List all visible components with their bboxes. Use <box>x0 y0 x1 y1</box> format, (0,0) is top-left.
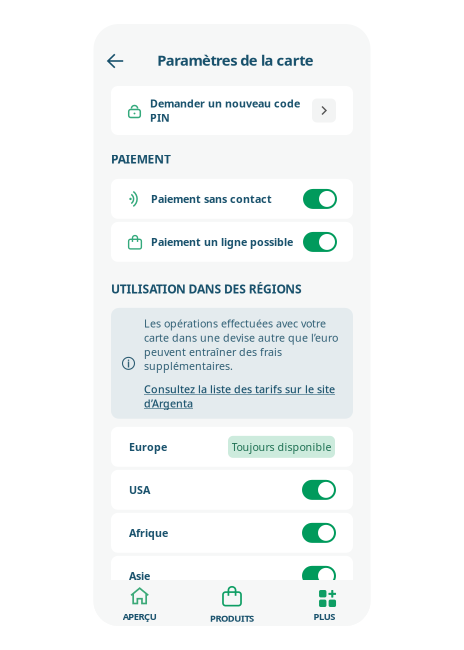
button[interactable]: Afrique <box>111 513 353 553</box>
button[interactable]: PLUS <box>278 580 370 626</box>
button[interactable]: APERÇU <box>93 580 186 626</box>
button[interactable]: USA <box>111 470 353 510</box>
staticText: Paiement sans contact <box>151 192 272 206</box>
staticText: PRODUITS <box>210 612 254 624</box>
staticText: Paiement un ligne possible <box>151 235 293 249</box>
staticText: Toujours disponible <box>231 440 331 454</box>
staticText: Les opérations effectuées avec votre car… <box>144 316 338 373</box>
button[interactable]: Paiement sans contact <box>111 179 353 219</box>
staticText: Europe <box>129 440 167 454</box>
button[interactable]: Asie <box>111 556 353 596</box>
staticText: Consultez la liste des tarifs sur le sit… <box>144 382 335 410</box>
staticText: Asie <box>129 569 150 583</box>
staticText: Demander un nouveau code PIN <box>150 96 300 125</box>
staticText: i <box>127 356 130 370</box>
staticText: PAIEMENT <box>111 151 171 167</box>
staticText: UTILISATION DANS DES RÉGIONS <box>111 281 302 297</box>
button[interactable]: Consultez la liste des tarifs sur le sit… <box>144 382 340 410</box>
staticText: Paramètres de la carte <box>157 50 314 70</box>
staticText: Afrique <box>129 526 168 540</box>
staticText: USA <box>129 483 150 497</box>
button[interactable]: Back <box>100 46 130 76</box>
button[interactable]: Demander un nouveau code PIN <box>111 86 353 135</box>
button[interactable]: Europe <box>111 427 353 467</box>
button[interactable]: PRODUITS <box>186 580 278 626</box>
button[interactable]: Paiement un ligne possible <box>111 222 353 262</box>
staticText: PLUS <box>313 610 335 623</box>
staticText: APERÇU <box>123 610 157 623</box>
